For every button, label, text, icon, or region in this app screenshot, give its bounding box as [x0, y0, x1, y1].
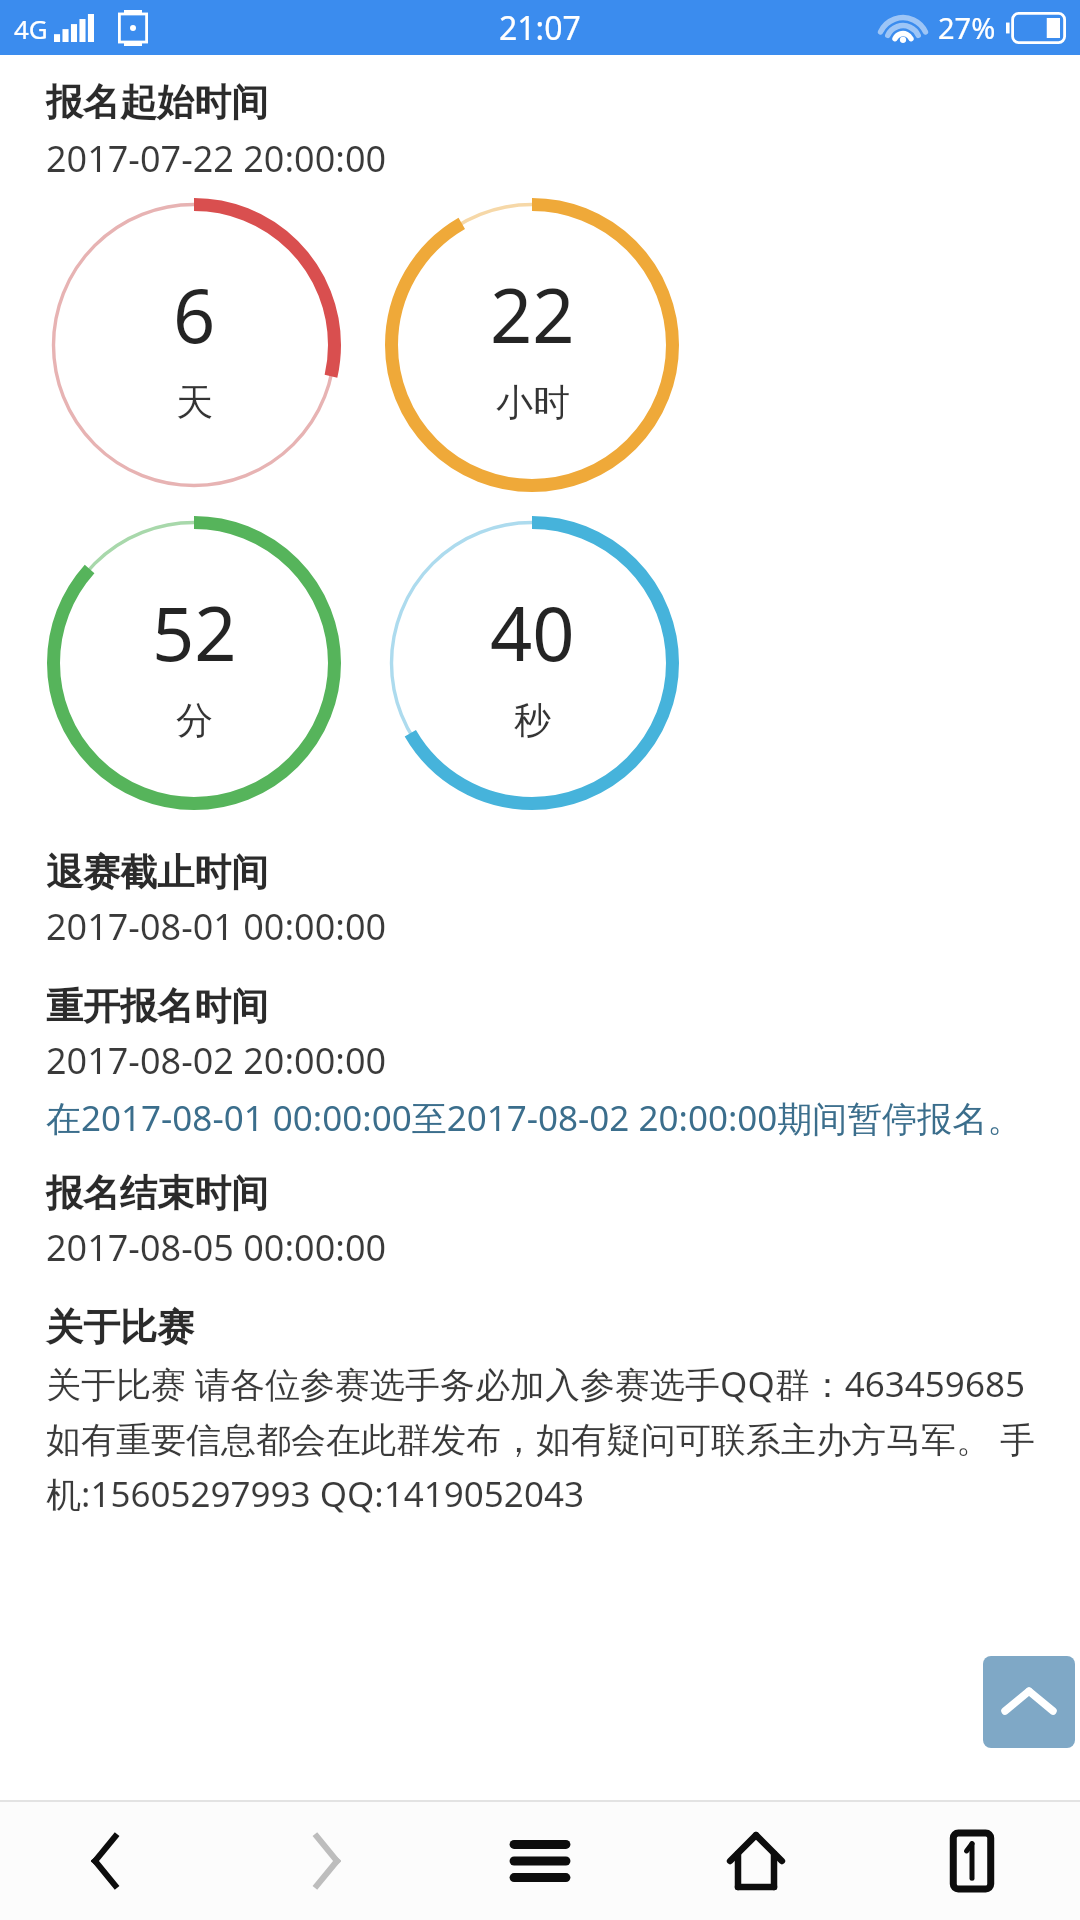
button[interactable]: Home	[648, 1802, 864, 1920]
button[interactable]: Scroll to top	[983, 1656, 1075, 1748]
button[interactable]: Back	[0, 1802, 216, 1920]
staticText: 报名结束时间	[46, 1170, 268, 1217]
staticText: 22	[490, 264, 575, 365]
staticText: 重开报名时间	[46, 983, 268, 1030]
staticText: 40	[490, 582, 575, 683]
staticText: 2017-08-05 00:00:00	[46, 1223, 387, 1272]
staticText: 关于比赛 请各位参赛选手务必加入参赛选手QQ群：463459685如有重要信息都…	[46, 1355, 1040, 1520]
staticText: 关于比赛	[46, 1304, 194, 1351]
staticText: 退赛截止时间	[46, 849, 268, 896]
staticText: 4G	[14, 11, 48, 46]
staticText: 小时	[496, 379, 570, 426]
staticText: 2017-08-02 20:00:00	[46, 1036, 387, 1085]
staticText: 分	[176, 697, 213, 744]
staticText: 天	[176, 379, 213, 426]
staticText: 秒	[514, 697, 551, 744]
button[interactable]: Menu	[432, 1802, 648, 1920]
staticText: 52	[152, 582, 237, 683]
button[interactable]: Forward	[216, 1802, 432, 1920]
staticText: 6	[173, 264, 216, 365]
staticText: 在2017-08-01 00:00:00至2017-08-02 20:00:00…	[46, 1089, 1023, 1144]
staticText: 2017-07-22 20:00:00	[46, 134, 387, 183]
button[interactable]: Tabs	[864, 1802, 1080, 1920]
staticText: 27%	[938, 8, 996, 47]
staticText: 报名起始时间	[46, 79, 268, 126]
staticText: 2017-08-01 00:00:00	[46, 902, 387, 951]
staticText: 21:07	[499, 6, 581, 50]
